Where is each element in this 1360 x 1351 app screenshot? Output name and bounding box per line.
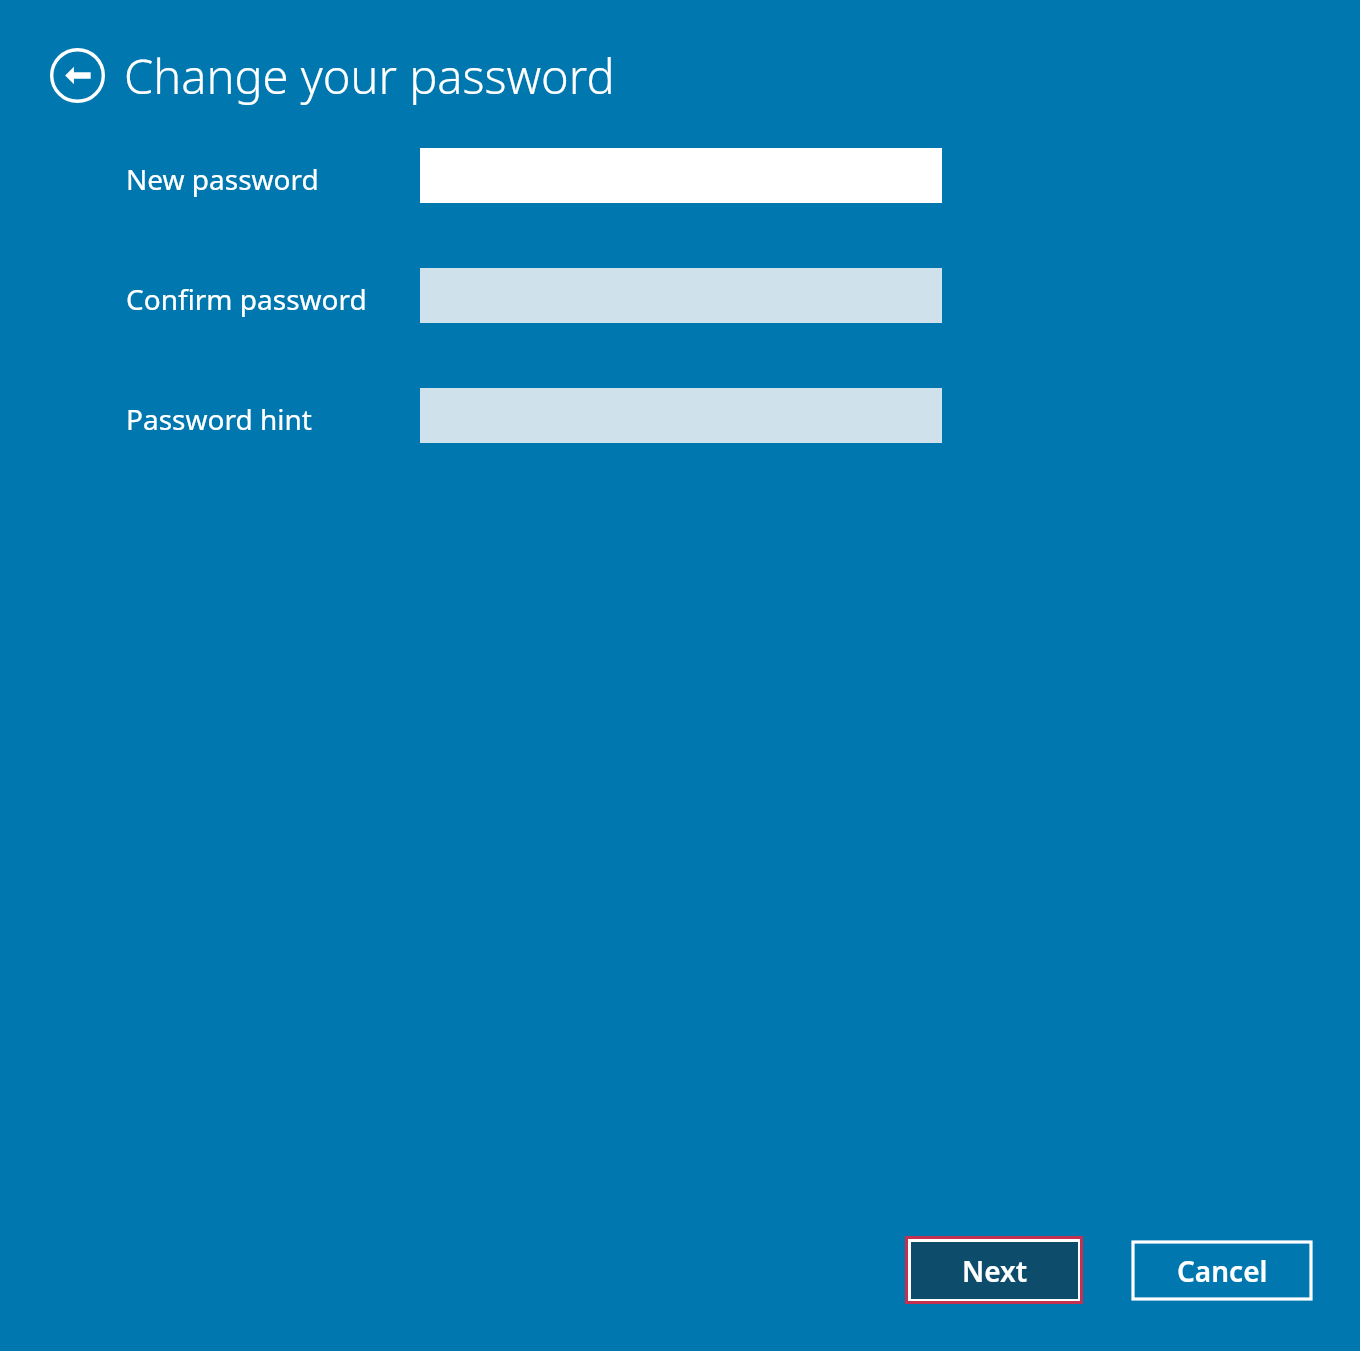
staticText: Confirm password (126, 280, 367, 318)
button[interactable]: Cancel (1133, 1242, 1311, 1299)
button[interactable]: Next (905, 1236, 1083, 1304)
staticText: Cancel (1177, 1252, 1268, 1290)
staticText: Change your password (124, 44, 615, 108)
staticText: Password hint (126, 400, 312, 438)
button[interactable]: Back (50, 48, 105, 103)
staticText: New password (126, 160, 319, 198)
staticText: Next (962, 1252, 1028, 1290)
